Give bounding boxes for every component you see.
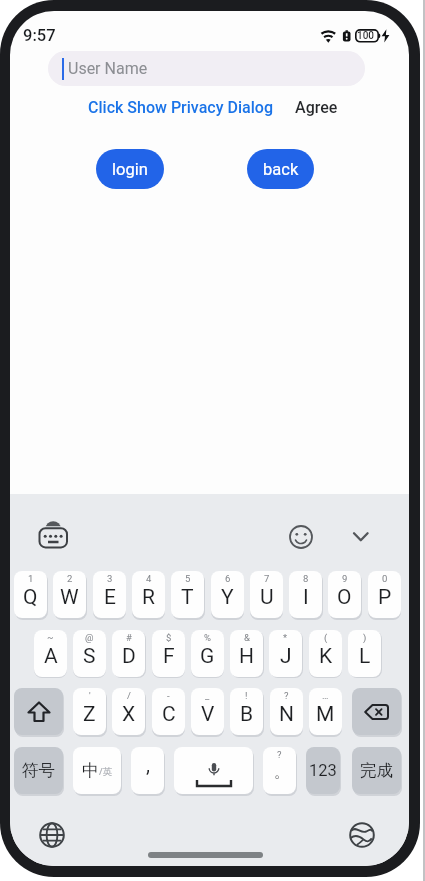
button[interactable]: 3: [93, 571, 126, 618]
staticText: 4: [146, 573, 152, 584]
staticText: $: [166, 632, 172, 643]
button[interactable]: 1: [14, 571, 47, 618]
button[interactable]: $: [152, 630, 185, 677]
staticText: M: [316, 702, 335, 727]
staticText: K: [319, 644, 333, 669]
staticText: 中: [82, 760, 99, 781]
button[interactable]: back: [247, 149, 314, 189]
button[interactable]: ~: [34, 630, 67, 677]
staticText: ,: [146, 753, 150, 776]
button[interactable]: ,: [131, 747, 164, 794]
staticText: V: [201, 702, 215, 727]
staticText: 100: [357, 30, 375, 42]
staticText: C: [162, 702, 176, 727]
staticText: 6: [225, 573, 231, 584]
staticText: J: [280, 644, 292, 669]
staticText: L: [359, 644, 371, 669]
button[interactable]: User Name: [48, 51, 365, 86]
button[interactable]: Agree: [295, 98, 338, 117]
staticText: /: [127, 690, 131, 701]
button[interactable]: 中: [73, 747, 121, 794]
staticText: 2: [67, 573, 73, 584]
staticText: D: [122, 644, 136, 669]
button[interactable]: @: [73, 630, 106, 677]
button[interactable]: -: [152, 688, 185, 735]
staticText: ): [363, 632, 367, 643]
staticText: S: [83, 644, 96, 669]
button[interactable]: [353, 532, 369, 543]
staticText: (: [324, 632, 328, 643]
button[interactable]: [289, 525, 313, 549]
button[interactable]: login: [96, 149, 164, 189]
staticText: 5: [185, 573, 191, 584]
button[interactable]: ): [348, 630, 381, 677]
staticText: _: [205, 690, 210, 701]
staticText: 8: [303, 573, 309, 584]
button[interactable]: &: [230, 630, 263, 677]
button[interactable]: (: [309, 630, 342, 677]
staticText: N: [279, 702, 294, 727]
button[interactable]: 8: [289, 571, 322, 618]
button[interactable]: 6: [211, 571, 244, 618]
button[interactable]: [37, 521, 71, 549]
staticText: G: [200, 644, 215, 669]
button[interactable]: _: [191, 688, 224, 735]
button[interactable]: 0: [368, 571, 401, 618]
staticText: ~: [47, 632, 54, 643]
button[interactable]: *: [269, 630, 302, 677]
staticText: &: [244, 632, 250, 643]
staticText: H: [239, 644, 254, 669]
staticText: P: [378, 585, 392, 610]
staticText: 9: [342, 573, 348, 584]
staticText: login: [112, 160, 148, 179]
button[interactable]: 123: [306, 747, 340, 794]
staticText: ': [89, 690, 91, 701]
staticText: User Name: [68, 59, 148, 78]
button[interactable]: …: [309, 688, 342, 735]
staticText: W: [60, 585, 79, 610]
button[interactable]: 4: [132, 571, 165, 618]
button[interactable]: 完成: [352, 747, 401, 794]
staticText: *: [283, 632, 288, 643]
button[interactable]: #: [112, 630, 145, 677]
button[interactable]: Click Show Privacy Dialog: [88, 98, 273, 117]
staticText: A: [44, 644, 58, 669]
button[interactable]: 7: [250, 571, 283, 618]
button[interactable]: 2: [53, 571, 86, 618]
button[interactable]: [174, 747, 253, 794]
button[interactable]: ?: [263, 747, 296, 794]
button[interactable]: !: [230, 688, 263, 735]
staticText: B: [240, 702, 254, 727]
button[interactable]: ': [73, 688, 106, 735]
staticText: I: [303, 585, 309, 610]
button[interactable]: [352, 688, 401, 735]
button[interactable]: [14, 688, 63, 735]
staticText: ?: [284, 690, 289, 701]
button[interactable]: 5: [171, 571, 204, 618]
staticText: 3: [107, 573, 113, 584]
staticText: ?: [277, 749, 282, 760]
staticText: 完成: [360, 760, 393, 781]
staticText: 。: [274, 763, 289, 782]
staticText: X: [122, 702, 136, 727]
button[interactable]: ?: [270, 688, 303, 735]
staticText: 7: [264, 573, 270, 584]
button[interactable]: 符号: [14, 747, 63, 794]
staticText: 123: [309, 761, 337, 780]
staticText: 0: [382, 573, 388, 584]
staticText: /英: [99, 765, 113, 778]
staticText: 符号: [22, 760, 55, 781]
staticText: U: [260, 585, 274, 610]
button[interactable]: 9: [328, 571, 361, 618]
staticText: R: [142, 585, 155, 610]
staticText: E: [104, 585, 116, 610]
button[interactable]: /: [112, 688, 145, 735]
button[interactable]: %: [191, 630, 224, 677]
button[interactable]: [39, 822, 65, 848]
staticText: Z: [83, 702, 96, 727]
staticText: %: [204, 632, 211, 643]
staticText: Q: [23, 585, 38, 610]
button[interactable]: [349, 822, 375, 848]
staticText: -: [167, 690, 170, 701]
staticText: T: [181, 585, 194, 610]
